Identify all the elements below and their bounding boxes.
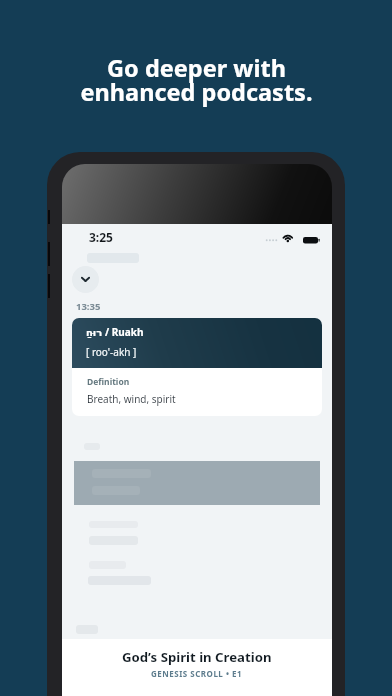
staticText: Definition	[87, 376, 130, 388]
staticText: Go deeper with enhanced podcasts.	[80, 52, 313, 108]
staticText: God’s Spirit in Creation	[122, 648, 272, 666]
staticText: 3:25	[89, 229, 113, 245]
button[interactable]: רוּחַ / Ruakh	[72, 318, 322, 416]
staticText: רוּחַ / Ruakh	[86, 325, 144, 339]
staticText: [ roo'-akh ]	[86, 345, 137, 359]
staticText: Breath, wind, spirit	[87, 392, 176, 406]
staticText: 13:35	[76, 300, 101, 313]
button[interactable]: Collapse	[72, 266, 99, 293]
staticText: GENESIS SCROLL • E1	[151, 668, 243, 679]
